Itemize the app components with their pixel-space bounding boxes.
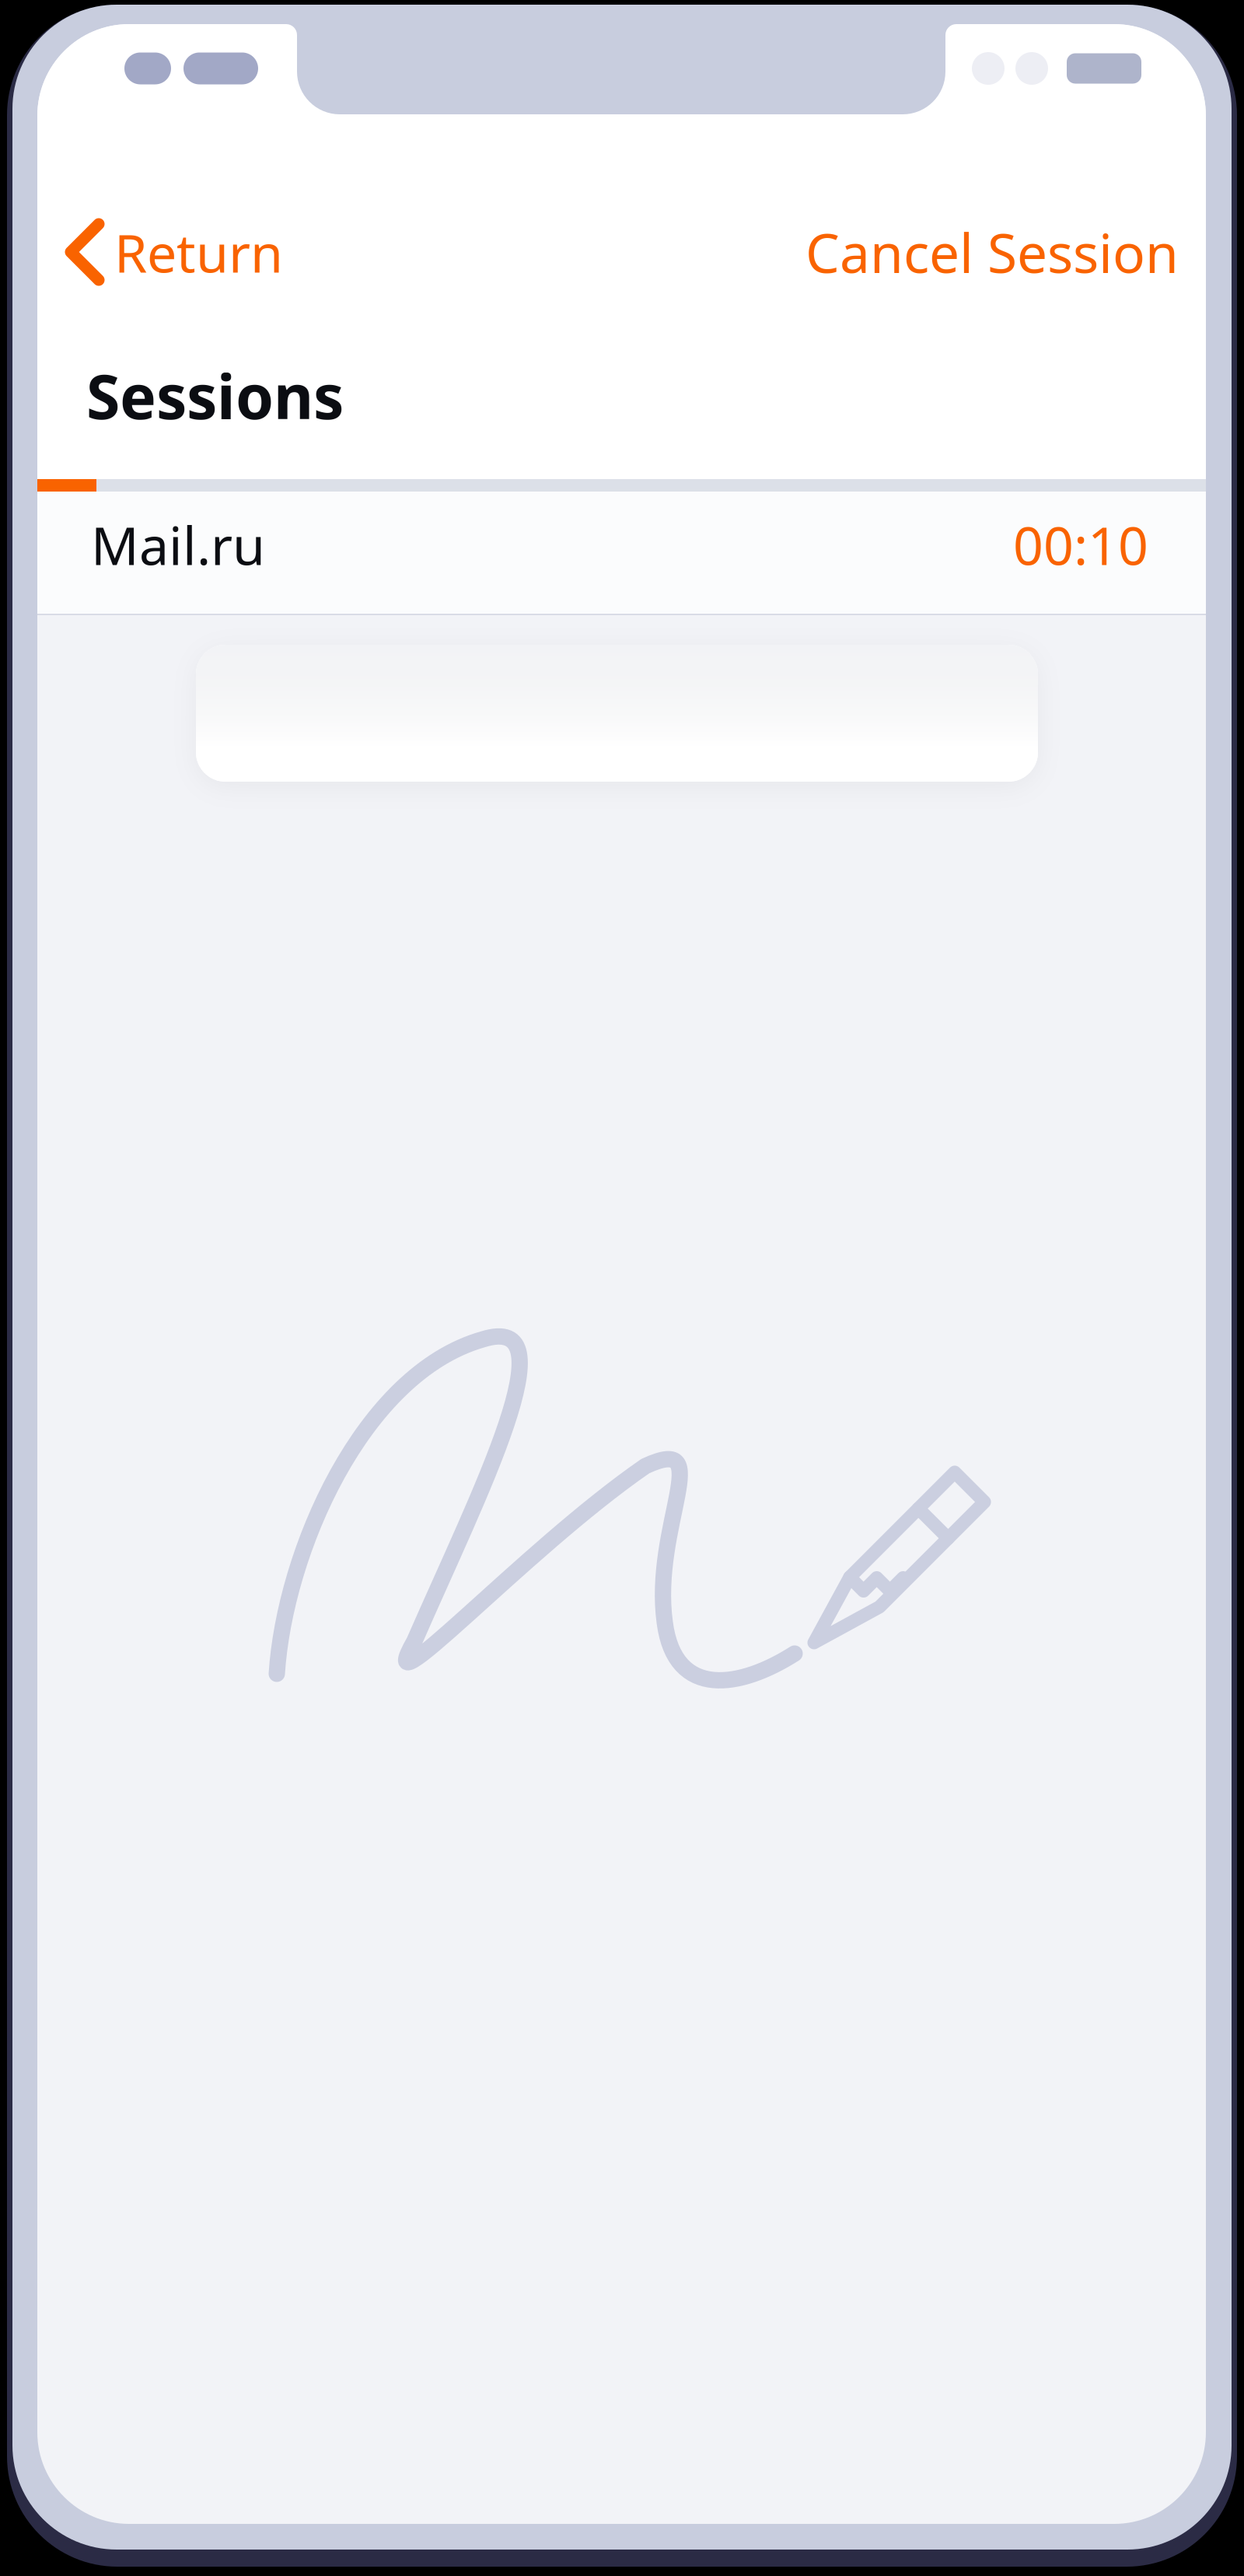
staticText: Sessions	[86, 355, 344, 436]
staticText: Return	[114, 217, 283, 287]
button[interactable]: Return	[46, 209, 294, 295]
button[interactable]: Mail.ru	[37, 492, 1206, 614]
staticText: Mail.ru	[91, 509, 265, 580]
button[interactable]: Cancel Session	[790, 209, 1194, 295]
staticText: 00:10	[1013, 509, 1148, 580]
staticText: Cancel Session	[805, 216, 1179, 288]
